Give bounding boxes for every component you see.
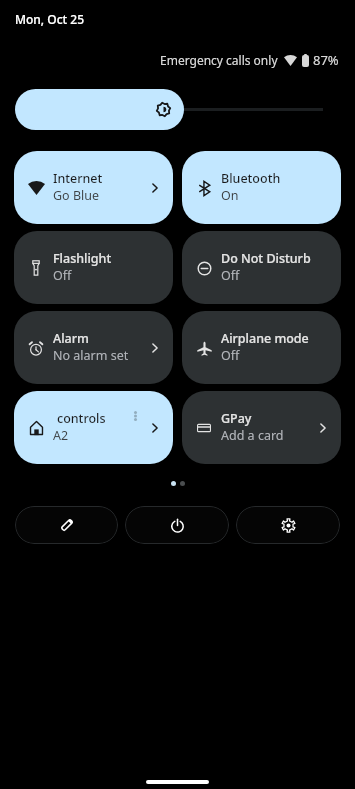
button[interactable]: controls — [14, 391, 173, 464]
button[interactable]: Flashlight — [14, 231, 173, 304]
button[interactable]: Airplane mode — [182, 311, 341, 384]
staticText: Alarm — [53, 330, 89, 347]
button[interactable] — [15, 89, 184, 130]
button[interactable]: Power — [125, 506, 229, 544]
staticText: Emergency calls only — [160, 52, 278, 68]
button[interactable]: Alarm — [14, 311, 173, 384]
staticText: Go Blue — [53, 187, 100, 204]
staticText: 87% — [313, 51, 339, 69]
staticText: Off — [221, 267, 240, 284]
button[interactable]: Edit — [15, 506, 118, 544]
button[interactable]: Settings — [236, 506, 340, 544]
staticText: No alarm set — [53, 347, 129, 364]
staticText: On — [221, 187, 239, 204]
staticText: Bluetooth — [221, 170, 281, 187]
staticText: Mon, Oct 25 — [15, 11, 85, 27]
staticText: Do Not Disturb — [221, 250, 311, 267]
button[interactable]: GPay — [182, 391, 341, 464]
staticText: Add a card — [221, 427, 284, 444]
staticText: Flashlight — [53, 250, 112, 267]
staticText: controls — [57, 410, 106, 427]
staticText: Off — [53, 267, 72, 284]
button[interactable]: Internet — [14, 151, 173, 224]
staticText: Airplane mode — [221, 330, 309, 347]
staticText: GPay — [221, 410, 252, 427]
button[interactable]: Bluetooth — [182, 151, 341, 224]
staticText: Internet — [53, 170, 103, 187]
button[interactable]: Do Not Disturb — [182, 231, 341, 304]
staticText: A2 — [53, 427, 69, 444]
staticText: Off — [221, 347, 240, 364]
